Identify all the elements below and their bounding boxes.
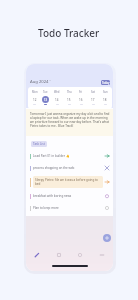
staticText: Aug 2024 ˅ xyxy=(30,79,51,85)
staticText: Thu xyxy=(67,90,72,94)
staticText: Load Part 01 in builder 👍 xyxy=(33,154,103,158)
button[interactable]: Add task xyxy=(103,234,111,242)
button[interactable]: More xyxy=(98,251,106,259)
button[interactable]: Plan to keep more xyxy=(26,202,113,214)
staticText: Mon xyxy=(32,90,38,94)
staticText: Sleepy Pietro: file we it was a before g… xyxy=(35,178,101,186)
staticText: Wed xyxy=(54,90,60,94)
staticText: 12 xyxy=(33,98,37,102)
button[interactable]: Complete xyxy=(103,204,111,212)
button[interactable]: process shopping on the web xyxy=(26,162,113,174)
button[interactable]: Move xyxy=(103,152,111,160)
button[interactable]: Favourite xyxy=(103,192,111,200)
staticText: 15 xyxy=(67,98,71,102)
staticText: Todo Tracker xyxy=(38,26,100,40)
button[interactable]: breakfast with boring news xyxy=(26,190,113,202)
staticText: breakfast with boring news xyxy=(33,194,103,198)
button[interactable]: Move xyxy=(103,178,111,186)
staticText: Task List xyxy=(33,142,45,146)
staticText: process shopping on the web xyxy=(33,166,103,170)
button[interactable]: Sleepy Pietro: file we it was a before g… xyxy=(26,174,113,190)
button[interactable]: Today xyxy=(101,80,110,85)
button[interactable]: Calendar xyxy=(55,251,63,259)
button[interactable]: Delete xyxy=(103,164,111,172)
staticText: Sat xyxy=(91,90,95,94)
staticText: Today xyxy=(102,81,110,85)
staticText: 17 xyxy=(91,98,95,102)
staticText: 18 xyxy=(103,98,107,102)
staticText: 16 xyxy=(79,98,83,102)
button[interactable]: Notes xyxy=(33,251,41,259)
button[interactable]: Task List xyxy=(31,141,47,147)
staticText: Plan to keep more xyxy=(33,206,103,210)
staticText: Fri xyxy=(79,90,83,94)
button[interactable]: Settings xyxy=(76,251,84,259)
staticText: 14 xyxy=(55,98,59,102)
staticText: Sun xyxy=(103,90,108,94)
button[interactable]: Load Part 01 in builder 👍 xyxy=(26,150,113,162)
staticText: Tue xyxy=(43,90,48,94)
staticText: Tomorrow I just wanna organize my day a … xyxy=(30,112,110,128)
staticText: 13 xyxy=(44,98,48,102)
